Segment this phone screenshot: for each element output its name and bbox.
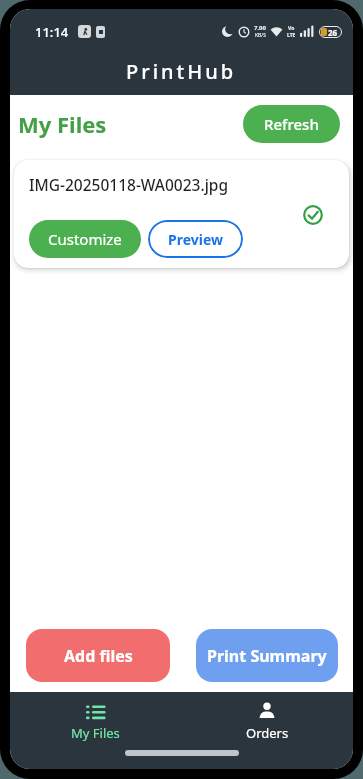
button[interactable]: Customize — [29, 220, 141, 258]
button[interactable]: Orders — [181, 699, 353, 742]
staticText: Add files — [64, 645, 133, 667]
staticText: Orders — [246, 724, 289, 742]
staticText: PrintHub — [126, 58, 237, 85]
staticText: Refresh — [264, 114, 319, 134]
button[interactable]: Add files — [26, 629, 170, 682]
staticText: KB/S — [255, 32, 266, 39]
button[interactable]: IMG-20250118-WA0023.jpg — [14, 160, 349, 268]
staticText: IMG-20250118-WA0023.jpg — [29, 174, 229, 195]
staticText: Customize — [48, 229, 122, 249]
button[interactable]: My Files — [10, 699, 181, 742]
staticText: Vo — [288, 25, 295, 32]
staticText: My Files — [71, 724, 120, 742]
staticText: My Files — [18, 109, 107, 139]
button[interactable]: Refresh — [243, 105, 340, 143]
staticText: LTE — [287, 32, 296, 39]
staticText: 26 — [328, 27, 338, 38]
staticText: Print Summary — [207, 645, 327, 667]
staticText: 7.00 — [254, 24, 266, 32]
staticText: Preview — [168, 230, 223, 249]
button[interactable]: Preview — [148, 220, 243, 258]
staticText: 11:14 — [35, 23, 69, 41]
button[interactable]: Print Summary — [196, 629, 338, 682]
